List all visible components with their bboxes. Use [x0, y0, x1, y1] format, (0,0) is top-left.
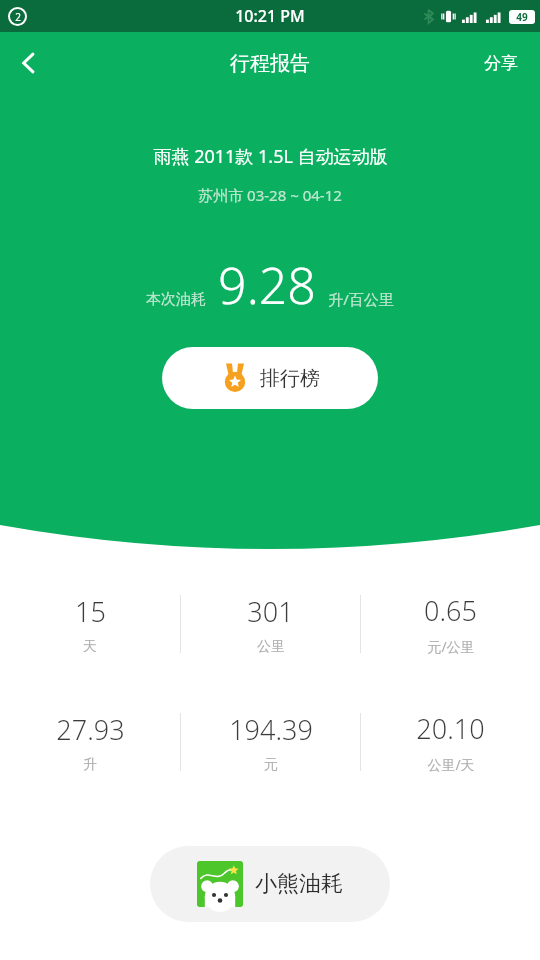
staticText: 27.93 — [56, 711, 125, 748]
staticText: 194.39 — [229, 711, 313, 748]
staticText: 排行榜 — [260, 366, 320, 391]
staticText: 元/公里 — [427, 637, 475, 656]
button[interactable]: 194.39 — [181, 711, 360, 774]
staticText: 元 — [264, 756, 278, 774]
button[interactable]: 小熊油耗 — [150, 846, 390, 922]
button[interactable]: 20.10 — [361, 710, 540, 774]
staticText: 9.28 — [218, 251, 316, 319]
button[interactable]: 排行榜 — [162, 347, 378, 409]
button[interactable]: 0.65 — [361, 592, 540, 656]
staticText: 天 — [83, 638, 97, 656]
staticText: 301 — [247, 593, 294, 630]
staticText: 升 — [83, 756, 97, 774]
staticText: 分享 — [484, 53, 518, 74]
staticText: 公里/天 — [427, 755, 475, 774]
button[interactable]: 15 — [0, 593, 180, 656]
staticText: 升/百公里 — [328, 289, 394, 309]
staticText: 小熊油耗 — [255, 870, 343, 898]
staticText: 49 — [516, 10, 528, 24]
staticText: 20.10 — [416, 710, 485, 747]
button[interactable]: Back — [0, 34, 58, 92]
staticText: 本次油耗 — [146, 290, 206, 309]
staticText: 2 — [15, 10, 21, 24]
button[interactable]: 301 — [181, 593, 360, 656]
button[interactable]: 27.93 — [0, 711, 180, 774]
staticText: 行程报告 — [230, 51, 310, 76]
staticText: 15 — [75, 593, 106, 630]
staticText: 公里 — [257, 638, 285, 656]
button[interactable]: 分享 — [462, 39, 540, 88]
staticText: 0.65 — [424, 592, 477, 629]
staticText: 10:21 PM — [235, 5, 305, 27]
staticText: 苏州市 03-28 ~ 04-12 — [198, 185, 342, 205]
staticText: 雨燕 2011款 1.5L 自动运动版 — [153, 144, 388, 169]
